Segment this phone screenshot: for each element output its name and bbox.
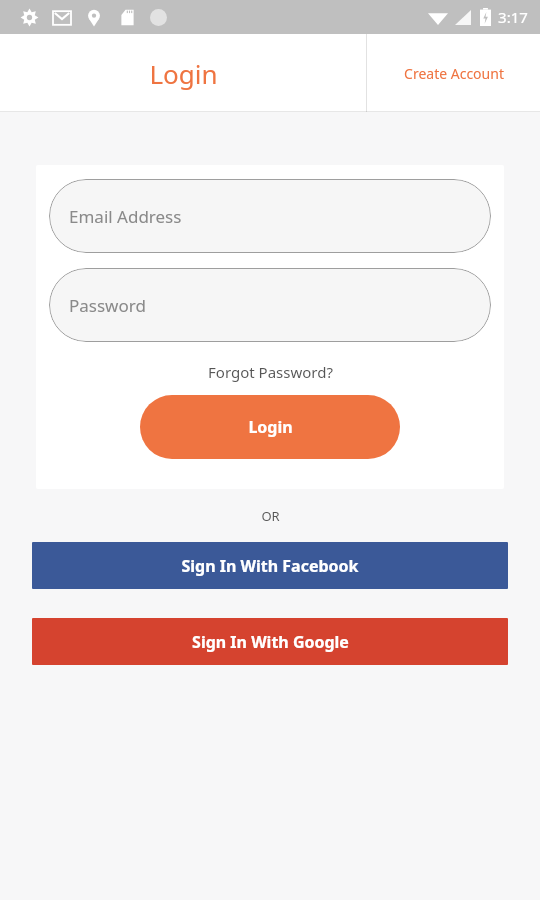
staticText: OR xyxy=(261,507,280,525)
staticText: Sign In With Facebook xyxy=(181,555,359,577)
button[interactable]: Create Account xyxy=(367,34,540,112)
button[interactable]: Sign In With Google xyxy=(32,618,508,665)
staticText: Sign In With Google xyxy=(192,631,349,653)
staticText: 3:17 xyxy=(498,7,528,27)
staticText: Create Account xyxy=(404,64,504,83)
staticText: Login xyxy=(248,416,293,438)
button[interactable]: Login xyxy=(140,395,400,459)
button[interactable]: Forgot Password? xyxy=(204,358,337,386)
staticText: Login xyxy=(149,56,218,91)
staticText: Email Address xyxy=(69,205,182,228)
button[interactable]: Sign In With Facebook xyxy=(32,542,508,589)
button[interactable]: Email Address xyxy=(49,179,491,253)
button[interactable]: Login xyxy=(0,34,366,112)
staticText: Password xyxy=(69,294,146,317)
button[interactable]: Password xyxy=(49,268,491,342)
